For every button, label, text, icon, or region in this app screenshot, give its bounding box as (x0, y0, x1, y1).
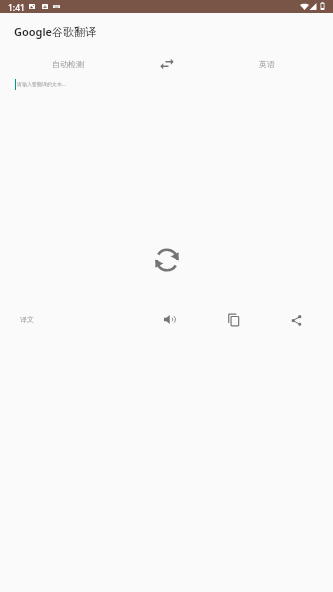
staticText: 1:41 (8, 2, 25, 14)
staticText: Google谷歌翻译 (14, 24, 96, 39)
staticText: 请输入要翻译的文本... (17, 81, 67, 88)
staticText: 译文 (20, 315, 34, 324)
button[interactable]: Listen (157, 307, 182, 332)
button[interactable]: Share (284, 308, 309, 333)
staticText: 自动检测 (52, 59, 84, 69)
button[interactable]: 自动检测 (32, 53, 104, 75)
button[interactable]: Copy (221, 307, 246, 332)
staticText: 英语 (259, 59, 275, 69)
button[interactable]: 英语 (231, 53, 303, 75)
button[interactable]: Swap languages (153, 53, 180, 75)
button[interactable]: Translating (149, 242, 184, 277)
